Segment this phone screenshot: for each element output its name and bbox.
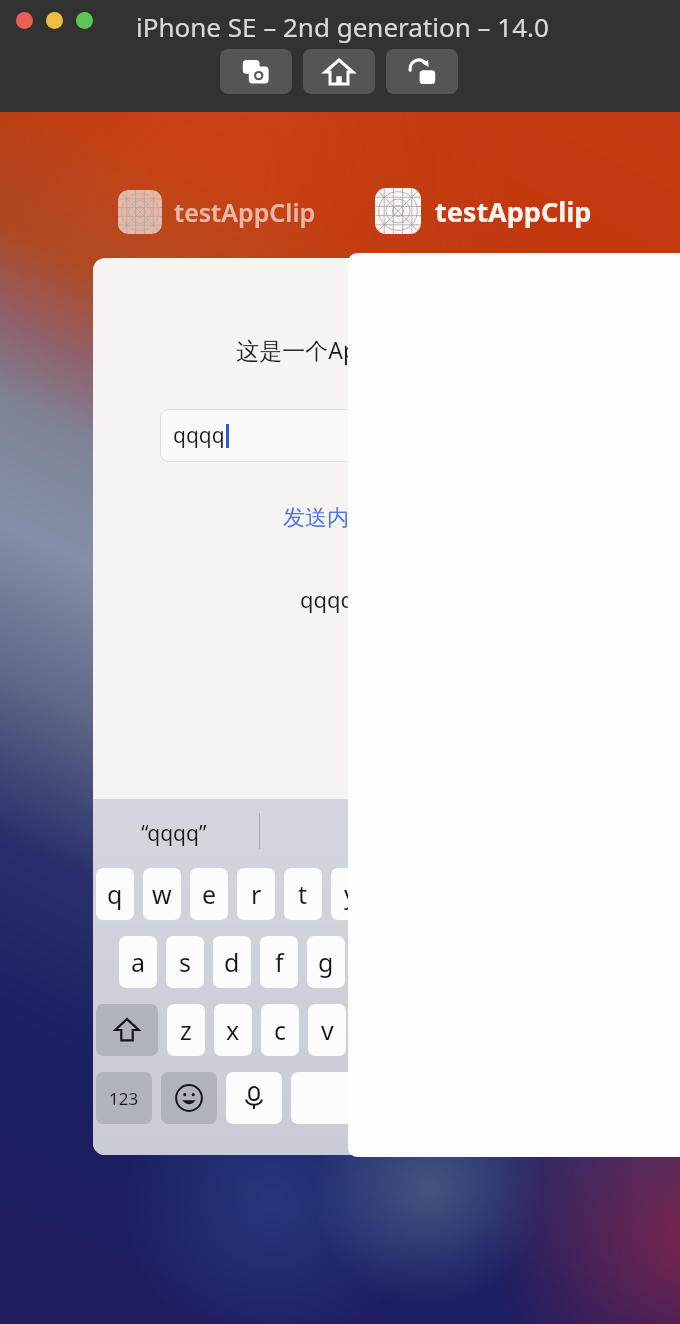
staticText: x — [226, 1013, 240, 1047]
other: Shift — [114, 1017, 140, 1043]
button[interactable]: Home — [303, 49, 375, 94]
button[interactable]: q — [96, 868, 134, 920]
button[interactable]: Rotate — [386, 49, 458, 94]
other: Emoji — [175, 1084, 203, 1112]
staticText: q — [107, 877, 123, 911]
other: testAppClip app icon — [375, 188, 421, 234]
button[interactable]: r — [237, 868, 275, 920]
staticText: qqqq — [93, 584, 561, 614]
button[interactable]: 发送内容 — [93, 504, 561, 532]
staticText: testAppClip — [435, 193, 592, 230]
button[interactable]: x — [214, 1004, 252, 1056]
staticText: c — [274, 1013, 287, 1047]
button[interactable]: Emoji — [161, 1072, 217, 1124]
button[interactable]: e — [190, 868, 228, 920]
button[interactable]: testAppClip app icon — [118, 190, 316, 234]
button[interactable]: w — [143, 868, 181, 920]
button[interactable]: z — [167, 1004, 205, 1056]
button[interactable]: qqqq — [160, 409, 494, 462]
button[interactable]: s — [166, 936, 204, 988]
staticText: v — [321, 1013, 334, 1047]
staticText: w — [152, 877, 172, 911]
button[interactable]: Shift — [96, 1004, 158, 1056]
button[interactable]: Close — [16, 12, 33, 29]
staticText: f — [275, 945, 284, 979]
staticText: g — [318, 945, 334, 979]
staticText: r — [251, 877, 262, 911]
button[interactable]: g — [307, 936, 345, 988]
button[interactable]: y — [331, 868, 369, 920]
button[interactable]: t — [284, 868, 322, 920]
staticText: 发送内容 — [283, 504, 371, 532]
staticText: 123 — [109, 1087, 139, 1110]
staticText: s — [179, 945, 191, 979]
staticText: 这是一个App Clip — [93, 334, 561, 365]
button[interactable]: 123 — [96, 1072, 152, 1124]
button[interactable]: f — [260, 936, 298, 988]
button[interactable]: a — [119, 936, 157, 988]
staticText: “qqqq” — [141, 819, 207, 848]
staticText: y — [344, 877, 357, 911]
button[interactable]: v — [308, 1004, 346, 1056]
other: Dictation microphone — [241, 1085, 267, 1111]
button[interactable]: testAppClip app icon — [375, 188, 592, 234]
staticText: e — [202, 877, 217, 911]
staticText: testAppClip — [174, 195, 316, 229]
staticText: a — [131, 945, 146, 979]
staticText: t — [298, 877, 308, 911]
button[interactable]: c — [261, 1004, 299, 1056]
staticText: qqqq — [173, 421, 225, 450]
button[interactable]: d — [213, 936, 251, 988]
button[interactable]: Minimize — [46, 12, 63, 29]
button[interactable]: Dictation — [226, 1072, 282, 1124]
staticText: iPhone SE – 2nd generation – 14.0 — [136, 9, 549, 44]
staticText: d — [224, 945, 240, 979]
button[interactable]: Screenshot — [220, 49, 292, 94]
other: testAppClip app icon — [118, 190, 162, 234]
staticText: z — [180, 1013, 192, 1047]
button[interactable]: Zoom — [76, 12, 93, 29]
